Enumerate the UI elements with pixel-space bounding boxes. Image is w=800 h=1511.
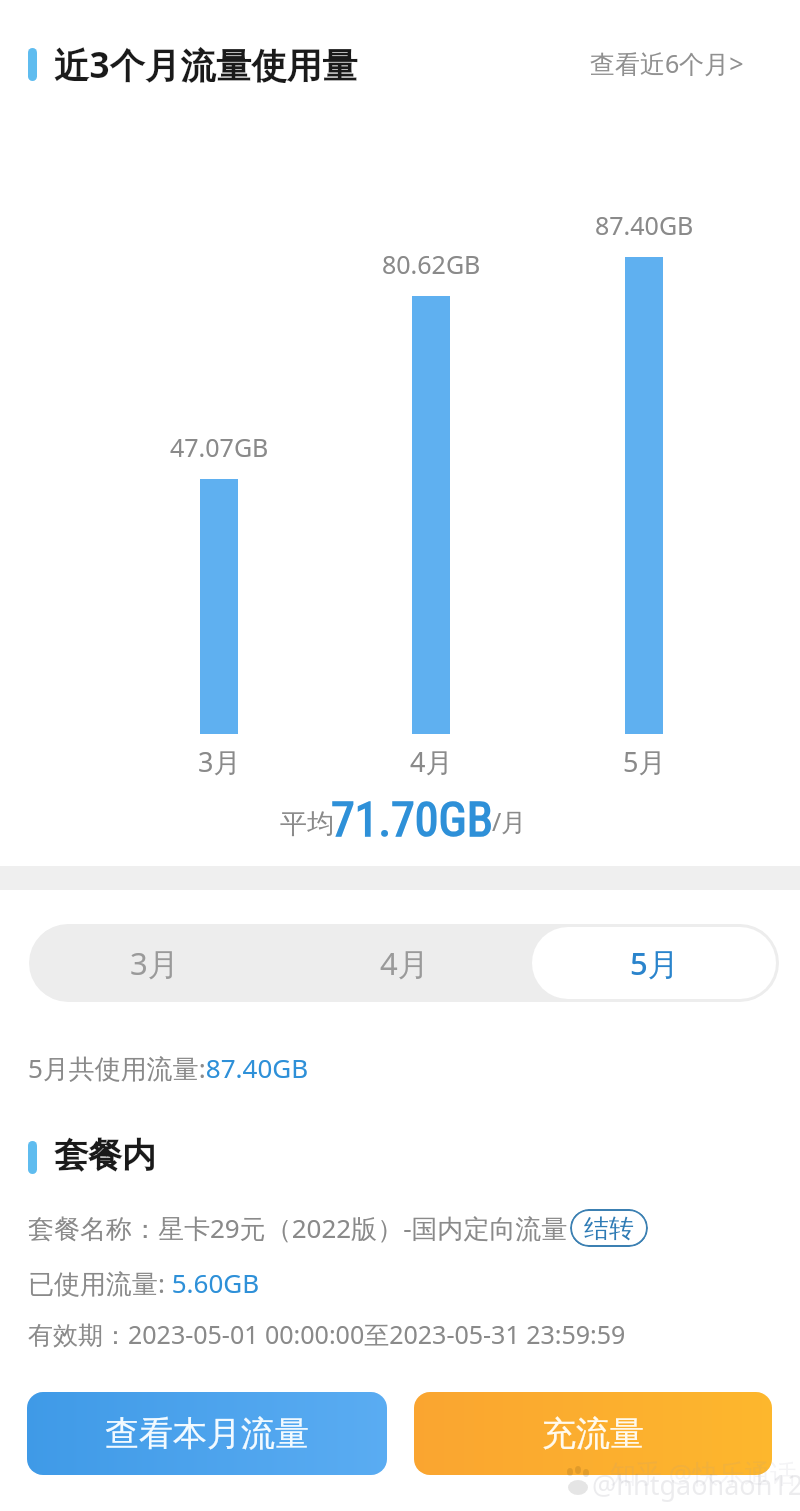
staticText: 3月 <box>198 743 241 780</box>
staticText: 47.07GB <box>170 430 269 464</box>
staticText: @hhtgaohaoh123 <box>592 1466 800 1503</box>
staticText: 3月 <box>130 942 179 984</box>
staticText: 87.40GB <box>595 208 694 242</box>
staticText: 71.70GB <box>331 791 493 847</box>
staticText: 近3个月流量使用量 <box>54 41 358 89</box>
staticText: 查看本月流量 <box>105 1412 309 1455</box>
staticText: 知乎 @快乐通话 <box>610 1455 797 1491</box>
staticText: 5月 <box>630 942 679 984</box>
staticText: 套餐名称：星卡29元（2022版）-国内定向流量 <box>28 1210 568 1246</box>
button[interactable]: 查看近6个月> <box>566 30 768 96</box>
staticText: 4月 <box>380 942 429 984</box>
staticText: 充流量 <box>542 1412 644 1455</box>
button[interactable]: 5月 <box>532 927 776 999</box>
staticText: 80.62GB <box>382 247 481 281</box>
staticText: 平均 <box>280 807 334 841</box>
staticText: 已使用流量: 5.60GB <box>28 1265 260 1301</box>
button[interactable]: 查看本月流量 <box>27 1392 387 1475</box>
staticText: /月 <box>492 804 527 838</box>
button[interactable]: 3月 <box>32 927 276 999</box>
staticText: 查看近6个月> <box>590 46 744 80</box>
staticText: 套餐内 <box>54 1134 156 1177</box>
staticText: 5月 <box>623 743 666 780</box>
button[interactable]: 充流量 <box>414 1392 772 1475</box>
staticText: 5月共使用流量:87.40GB <box>28 1050 309 1086</box>
button[interactable]: 4月 <box>282 927 526 999</box>
staticText: 结转 <box>584 1213 634 1244</box>
staticText: 4月 <box>410 743 453 780</box>
staticText: 有效期：2023-05-01 00:00:00至2023-05-31 23:59… <box>28 1317 626 1351</box>
